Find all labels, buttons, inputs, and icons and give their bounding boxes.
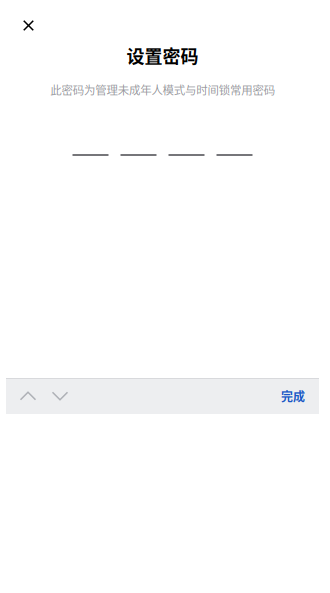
button[interactable]: 完成 <box>281 378 319 414</box>
button[interactable]: Next field <box>44 378 76 414</box>
staticText: 此密码为管理未成年人模式与时间锁常用密码 <box>50 81 275 98</box>
button[interactable]: Close <box>8 5 48 45</box>
staticText: 设置密码 <box>126 42 198 69</box>
button[interactable]: Previous field <box>12 378 44 414</box>
staticText: 完成 <box>281 387 305 405</box>
